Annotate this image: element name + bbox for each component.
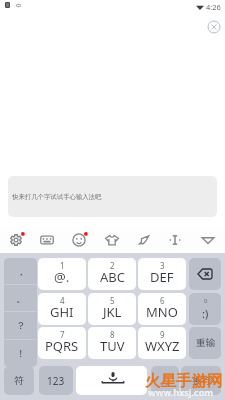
staticText: 6 bbox=[160, 295, 165, 306]
button[interactable]: Period bbox=[4, 285, 37, 311]
button[interactable]: Keyboard layout bbox=[34, 227, 59, 253]
button[interactable]: 2 bbox=[88, 258, 136, 290]
button[interactable]: Collapse keyboard bbox=[195, 227, 220, 253]
staticText: ！ bbox=[16, 347, 26, 360]
button[interactable]: Exclamation mark bbox=[4, 340, 37, 367]
button[interactable]: Question mark bbox=[4, 312, 37, 339]
staticText: TUV bbox=[100, 337, 125, 355]
staticText: 0 bbox=[204, 297, 208, 305]
button[interactable]: 5 bbox=[88, 293, 136, 325]
staticText: 5 bbox=[110, 295, 115, 306]
staticText: ， bbox=[16, 265, 26, 278]
staticText: :) bbox=[202, 306, 209, 321]
staticText: 2 bbox=[110, 260, 115, 271]
button[interactable]: ，。 bbox=[151, 366, 179, 395]
button[interactable]: 重输 bbox=[189, 327, 221, 359]
button[interactable]: 4 bbox=[38, 293, 86, 325]
button[interactable]: Emoticon bbox=[189, 293, 221, 325]
staticText: 8 bbox=[110, 329, 115, 340]
staticText: 123 bbox=[47, 374, 65, 388]
staticText: 7 bbox=[60, 329, 65, 340]
staticText: ，。 bbox=[157, 376, 173, 386]
staticText: 3 bbox=[160, 260, 165, 271]
button[interactable]: 3 bbox=[138, 258, 186, 290]
button[interactable]: 1 bbox=[38, 258, 86, 290]
staticText: WXYZ bbox=[145, 337, 180, 355]
button[interactable]: 符 bbox=[4, 366, 34, 395]
staticText: DEF bbox=[150, 268, 174, 286]
button[interactable]: 9 bbox=[138, 327, 186, 359]
staticText: 。 bbox=[16, 292, 26, 305]
staticText: 1 bbox=[60, 260, 65, 271]
staticText: 4 bbox=[60, 295, 65, 306]
button[interactable]: Handwriting bbox=[131, 227, 156, 253]
button[interactable]: Cursor bbox=[162, 227, 187, 253]
button[interactable]: Comma bbox=[4, 258, 37, 284]
button[interactable]: Emoji bbox=[66, 227, 91, 253]
staticText: 重输 bbox=[196, 337, 215, 349]
button[interactable]: Close bbox=[207, 20, 221, 34]
staticText: 符 bbox=[14, 374, 24, 387]
button[interactable]: Delete bbox=[189, 258, 221, 290]
staticText: @. bbox=[54, 268, 70, 286]
staticText: 4:26 bbox=[206, 2, 221, 12]
button[interactable]: 换行 bbox=[181, 366, 221, 395]
staticText: ？ bbox=[16, 319, 26, 332]
staticText: ABC bbox=[100, 268, 125, 286]
button[interactable]: Settings bbox=[3, 227, 28, 253]
staticText: 火星手游网 bbox=[145, 371, 223, 391]
button[interactable]: Theme bbox=[99, 227, 124, 253]
button[interactable]: 7 bbox=[38, 327, 86, 359]
staticText: www.hxsj.com bbox=[148, 386, 214, 398]
staticText: 快来打几个字试试手心输入法吧 bbox=[12, 193, 102, 201]
staticText: PQRS bbox=[45, 337, 79, 355]
staticText: GHI bbox=[50, 303, 74, 321]
button[interactable]: 123 bbox=[39, 366, 73, 395]
staticText: 换行 bbox=[192, 375, 211, 387]
button[interactable]: Space, voice input bbox=[76, 366, 147, 395]
staticText: MNO bbox=[146, 303, 178, 321]
button[interactable]: 8 bbox=[88, 327, 136, 359]
staticText: JKL bbox=[103, 303, 122, 321]
button[interactable]: 6 bbox=[138, 293, 186, 325]
button[interactable]: 快来打几个字试试手心输入法吧 bbox=[8, 176, 217, 217]
staticText: 9 bbox=[160, 329, 165, 340]
